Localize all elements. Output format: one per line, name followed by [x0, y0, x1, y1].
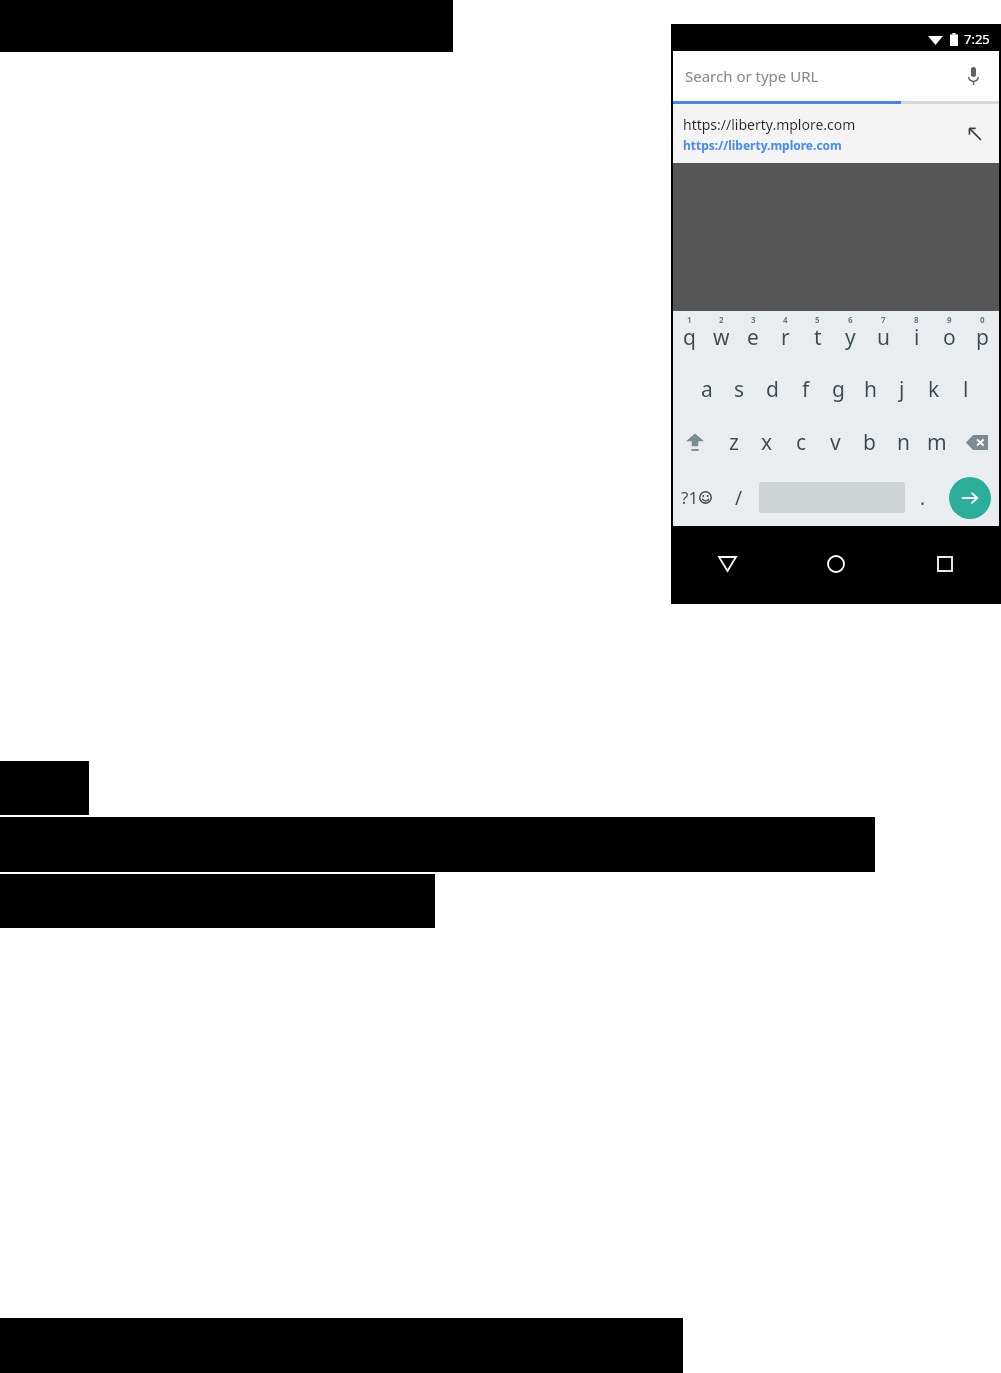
button[interactable]: .	[905, 469, 941, 526]
button[interactable]: s	[723, 363, 756, 416]
button[interactable]: d	[756, 363, 789, 416]
button[interactable]: 1	[673, 311, 705, 363]
button[interactable]: f	[789, 363, 822, 416]
button[interactable]: Use suggestion	[961, 120, 989, 148]
button[interactable]: Recents	[890, 526, 999, 602]
button[interactable]: ?1	[673, 469, 719, 526]
staticText: b	[863, 428, 876, 457]
staticText: h	[864, 375, 877, 404]
staticText: w	[713, 323, 730, 352]
staticText: 3	[751, 314, 756, 325]
button[interactable]: 0	[966, 311, 999, 363]
button[interactable]: 6	[834, 311, 867, 363]
staticText: o	[943, 323, 956, 352]
staticText: 7:25	[964, 30, 990, 48]
button[interactable]: Voice search	[959, 62, 987, 90]
button[interactable]: a	[690, 363, 723, 416]
staticText: .	[920, 485, 926, 511]
button[interactable]: l	[950, 363, 982, 416]
staticText: https://liberty.mplore.com	[683, 137, 842, 153]
staticText: g	[832, 375, 845, 404]
button[interactable]: k	[918, 363, 950, 416]
button[interactable]: z	[717, 416, 750, 469]
button[interactable]: x	[750, 416, 784, 469]
button[interactable]: /	[719, 469, 759, 526]
button[interactable]: n	[886, 416, 920, 469]
staticText: k	[928, 375, 940, 404]
staticText: e	[747, 323, 759, 352]
button[interactable]: 3	[737, 311, 769, 363]
staticText: c	[796, 428, 807, 457]
button[interactable]: j	[886, 363, 918, 416]
staticText: p	[976, 323, 989, 352]
staticText: 5	[815, 314, 820, 325]
button[interactable]: m	[920, 416, 954, 469]
staticText: 1	[687, 314, 692, 325]
button[interactable]: 9	[933, 311, 966, 363]
button[interactable]: v	[818, 416, 852, 469]
staticText: 0	[980, 314, 985, 325]
staticText: r	[781, 323, 790, 352]
staticText: https://liberty.mplore.com	[683, 115, 856, 134]
button[interactable]: 2	[705, 311, 737, 363]
staticText: s	[734, 375, 745, 404]
staticText: 7	[881, 314, 886, 325]
button[interactable]: Go	[941, 469, 999, 526]
button[interactable]: h	[854, 363, 886, 416]
staticText: Search or type URL	[685, 66, 959, 86]
staticText: 6	[848, 314, 853, 325]
staticText: i	[914, 323, 920, 352]
button[interactable]: https://liberty.mplore.com	[673, 104, 999, 163]
staticText: 9	[947, 314, 952, 325]
staticText: d	[766, 375, 779, 404]
staticText: j	[899, 375, 905, 404]
staticText: u	[877, 323, 890, 352]
staticText: ?1	[681, 486, 699, 509]
staticText: 8	[914, 314, 919, 325]
staticText: /	[735, 485, 743, 511]
button[interactable]: Back	[673, 526, 781, 602]
button[interactable]: 5	[801, 311, 834, 363]
staticText: m	[927, 428, 947, 457]
staticText: x	[761, 428, 773, 457]
button[interactable]: g	[822, 363, 854, 416]
button[interactable]: 4	[769, 311, 801, 363]
staticText: a	[701, 375, 713, 404]
staticText: y	[845, 323, 856, 352]
staticText: f	[802, 375, 810, 404]
staticText: n	[897, 428, 910, 457]
staticText: 4	[783, 314, 788, 325]
staticText: t	[814, 323, 822, 352]
button[interactable]: Home	[781, 526, 890, 602]
staticText: v	[830, 428, 841, 457]
staticText: z	[729, 428, 739, 457]
button[interactable]: Backspace	[954, 416, 999, 469]
button[interactable]: 8	[900, 311, 933, 363]
staticText: q	[683, 323, 696, 352]
button[interactable]: Shift	[673, 416, 717, 469]
staticText: l	[963, 375, 969, 404]
staticText: 2	[719, 314, 724, 325]
button[interactable]: b	[852, 416, 886, 469]
button[interactable]: 7	[867, 311, 900, 363]
button[interactable]: Search or type URL	[673, 51, 999, 101]
button[interactable]: c	[784, 416, 818, 469]
